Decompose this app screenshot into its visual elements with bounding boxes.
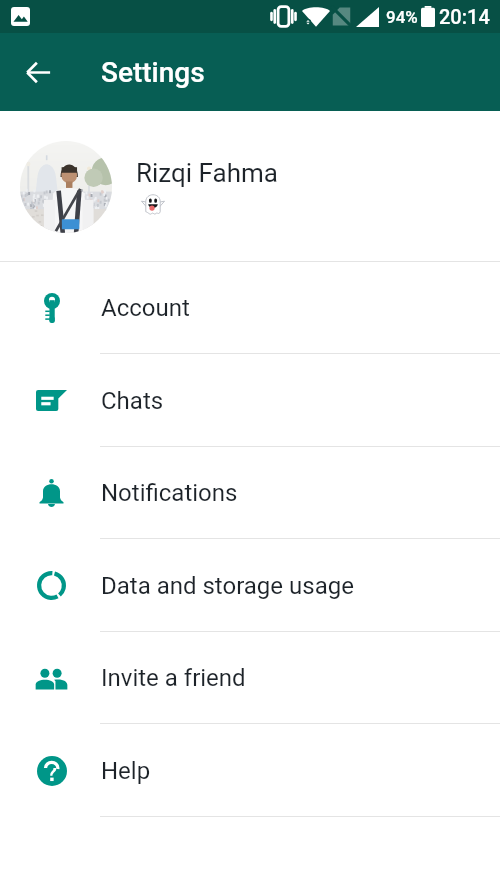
staticText: 94%: [386, 7, 418, 27]
staticText: Data and storage usage: [101, 572, 354, 600]
button[interactable]: Help: [0, 724, 500, 817]
staticText: Settings: [101, 56, 205, 89]
staticText: Rizqi Fahma: [136, 158, 278, 188]
button[interactable]: Chats: [0, 354, 500, 447]
staticText: Notifications: [101, 479, 238, 507]
button[interactable]: Navigate up: [15, 49, 61, 95]
button[interactable]: Notifications: [0, 447, 500, 539]
button[interactable]: Invite a friend: [0, 632, 500, 724]
staticText: Chats: [101, 387, 164, 415]
button[interactable]: Data and storage usage: [0, 539, 500, 632]
staticText: Account: [101, 294, 190, 322]
staticText: Invite a friend: [101, 664, 246, 692]
staticText: 20:14: [439, 5, 490, 28]
staticText: Help: [101, 757, 151, 785]
button[interactable]: Rizqi Fahma: [0, 111, 500, 262]
button[interactable]: Account: [0, 262, 500, 354]
